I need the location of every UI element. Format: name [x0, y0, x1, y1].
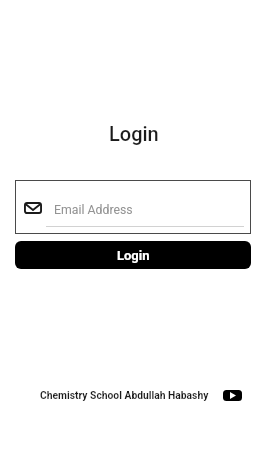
staticText: Login — [117, 248, 150, 263]
staticText: Login — [109, 122, 159, 145]
button[interactable]: YouTube channel — [223, 390, 242, 401]
button[interactable]: Login — [15, 241, 251, 269]
staticText: Chemistry School Abdullah Habashy — [40, 389, 209, 401]
button[interactable]: Email Address input — [15, 180, 251, 234]
staticText: Email Address — [54, 203, 133, 217]
